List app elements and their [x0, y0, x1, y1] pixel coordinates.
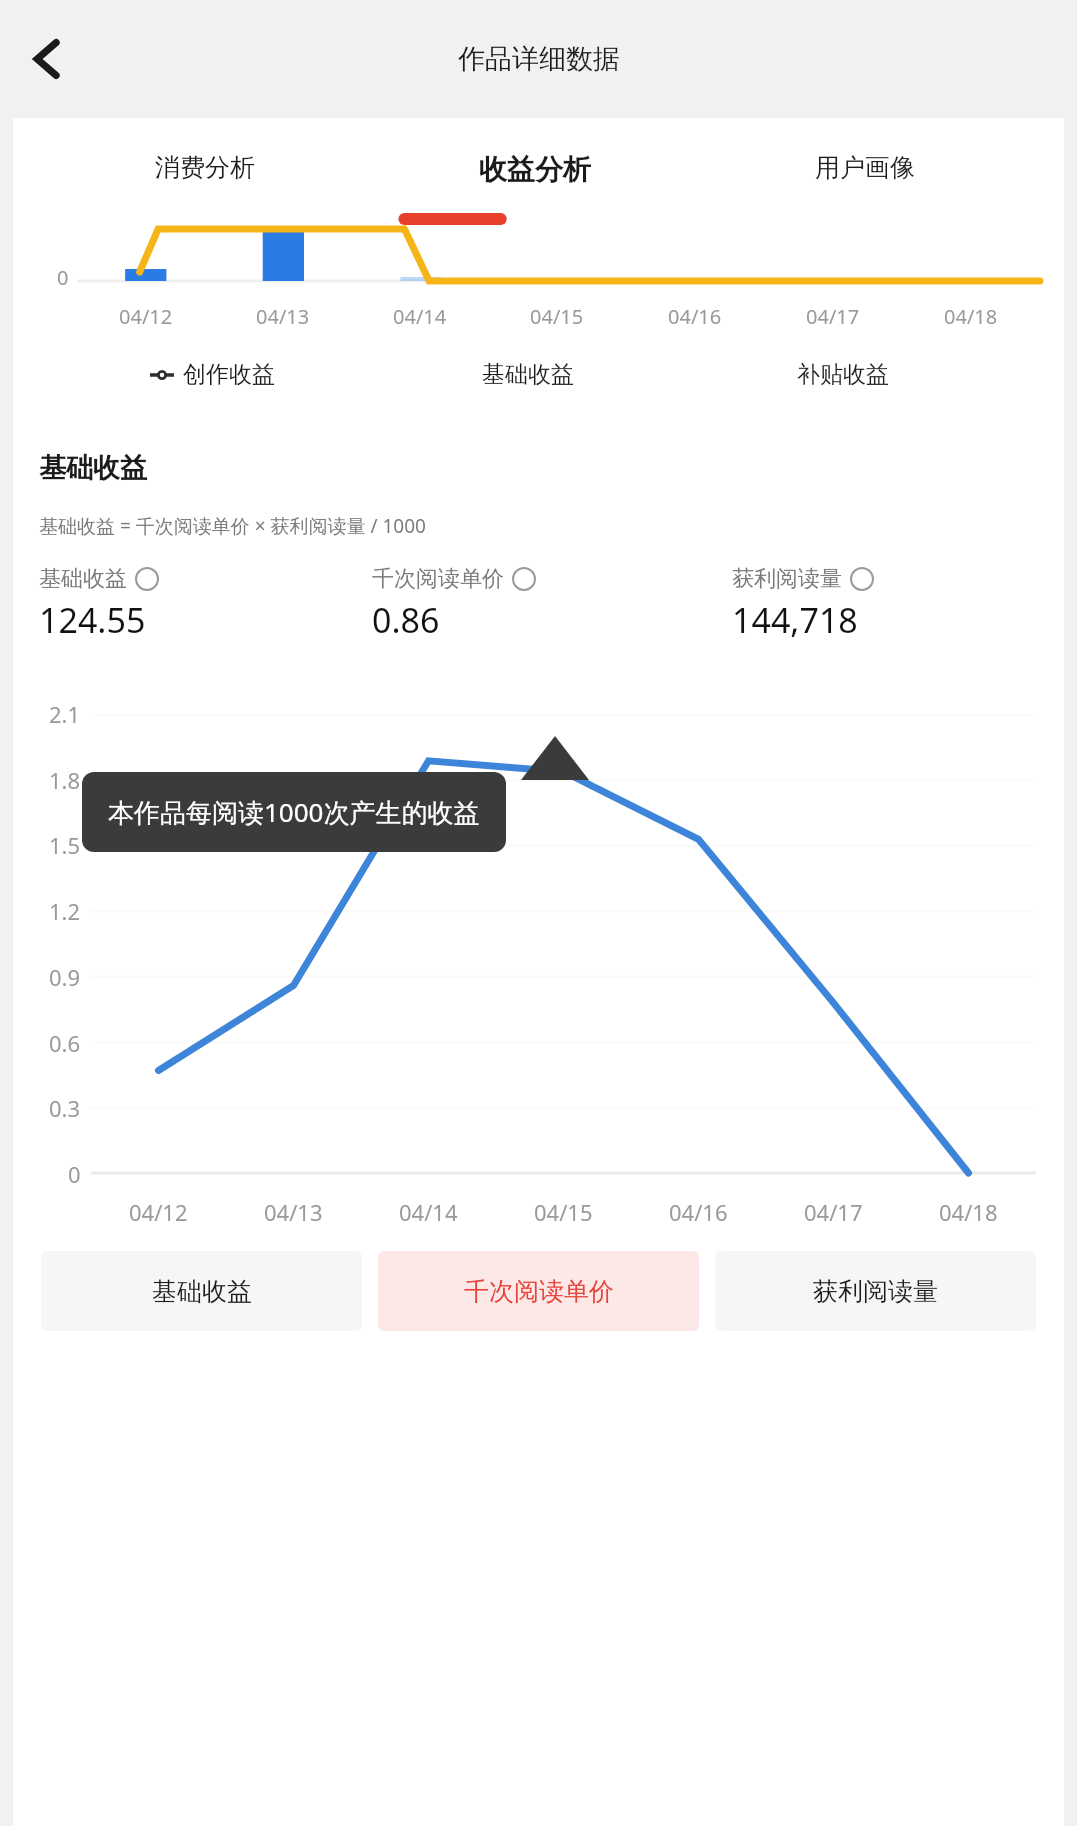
- button[interactable]: 获利阅读量: [732, 565, 874, 593]
- staticText: 2.1: [49, 699, 81, 729]
- staticText: 124.55: [39, 597, 146, 643]
- staticText: 本作品每阅读1000次产生的收益: [108, 794, 480, 830]
- staticText: 04/18: [944, 303, 998, 330]
- staticText: 基础收益: [152, 1276, 252, 1307]
- staticText: 04/14: [393, 303, 447, 330]
- staticText: 作品详细数据: [458, 42, 620, 76]
- staticText: 0: [57, 264, 69, 291]
- staticText: 1.8: [49, 765, 81, 795]
- button[interactable]: Back: [12, 26, 78, 92]
- staticText: 1.2: [49, 896, 81, 926]
- staticText: 0: [68, 1159, 81, 1189]
- staticText: 04/16: [668, 303, 722, 330]
- staticText: 144,718: [732, 597, 858, 643]
- staticText: 04/17: [804, 1197, 863, 1227]
- button[interactable]: 基础收益: [370, 360, 685, 389]
- staticText: 04/18: [939, 1197, 998, 1227]
- staticText: 千次阅读单价: [464, 1276, 614, 1307]
- staticText: 补贴收益: [797, 360, 889, 389]
- button[interactable]: 创作收益: [55, 360, 370, 389]
- staticText: 基础收益: [39, 451, 147, 485]
- staticText: 用户画像: [815, 152, 915, 183]
- button[interactable]: 获利阅读量: [715, 1251, 1036, 1331]
- button[interactable]: 基础收益: [39, 565, 159, 593]
- staticText: 基础收益: [482, 360, 574, 389]
- staticText: 04/15: [530, 303, 584, 330]
- button[interactable]: 收益分析: [370, 152, 700, 187]
- staticText: 04/16: [669, 1197, 728, 1227]
- staticText: 创作收益: [183, 360, 275, 389]
- staticText: 04/12: [129, 1197, 188, 1227]
- staticText: 基础收益: [39, 565, 127, 593]
- staticText: 1.5: [49, 830, 81, 860]
- staticText: 基础收益 = 千次阅读单价 × 获利阅读量 / 1000: [39, 513, 426, 539]
- staticText: 04/13: [264, 1197, 323, 1227]
- staticText: 消费分析: [155, 152, 255, 183]
- other: 说明: [512, 567, 536, 591]
- button[interactable]: 千次阅读单价: [378, 1251, 699, 1331]
- staticText: 0.86: [372, 597, 440, 643]
- staticText: 获利阅读量: [732, 565, 842, 593]
- staticText: 0.9: [49, 962, 81, 992]
- staticText: 04/17: [806, 303, 860, 330]
- other: 说明: [135, 567, 159, 591]
- staticText: 0.6: [49, 1028, 81, 1058]
- staticText: 收益分析: [479, 152, 591, 187]
- staticText: 获利阅读量: [813, 1276, 938, 1307]
- button[interactable]: 用户画像: [700, 152, 1030, 183]
- other: 说明: [850, 567, 874, 591]
- button[interactable]: 千次阅读单价: [372, 565, 536, 593]
- staticText: 04/14: [399, 1197, 458, 1227]
- staticText: 04/12: [119, 303, 173, 330]
- staticText: 04/13: [256, 303, 310, 330]
- button[interactable]: 基础收益: [41, 1251, 362, 1331]
- button[interactable]: 消费分析: [39, 152, 370, 183]
- staticText: 04/15: [534, 1197, 593, 1227]
- button[interactable]: 补贴收益: [685, 360, 1000, 389]
- staticText: 0.3: [49, 1093, 81, 1123]
- staticText: 千次阅读单价: [372, 565, 504, 593]
